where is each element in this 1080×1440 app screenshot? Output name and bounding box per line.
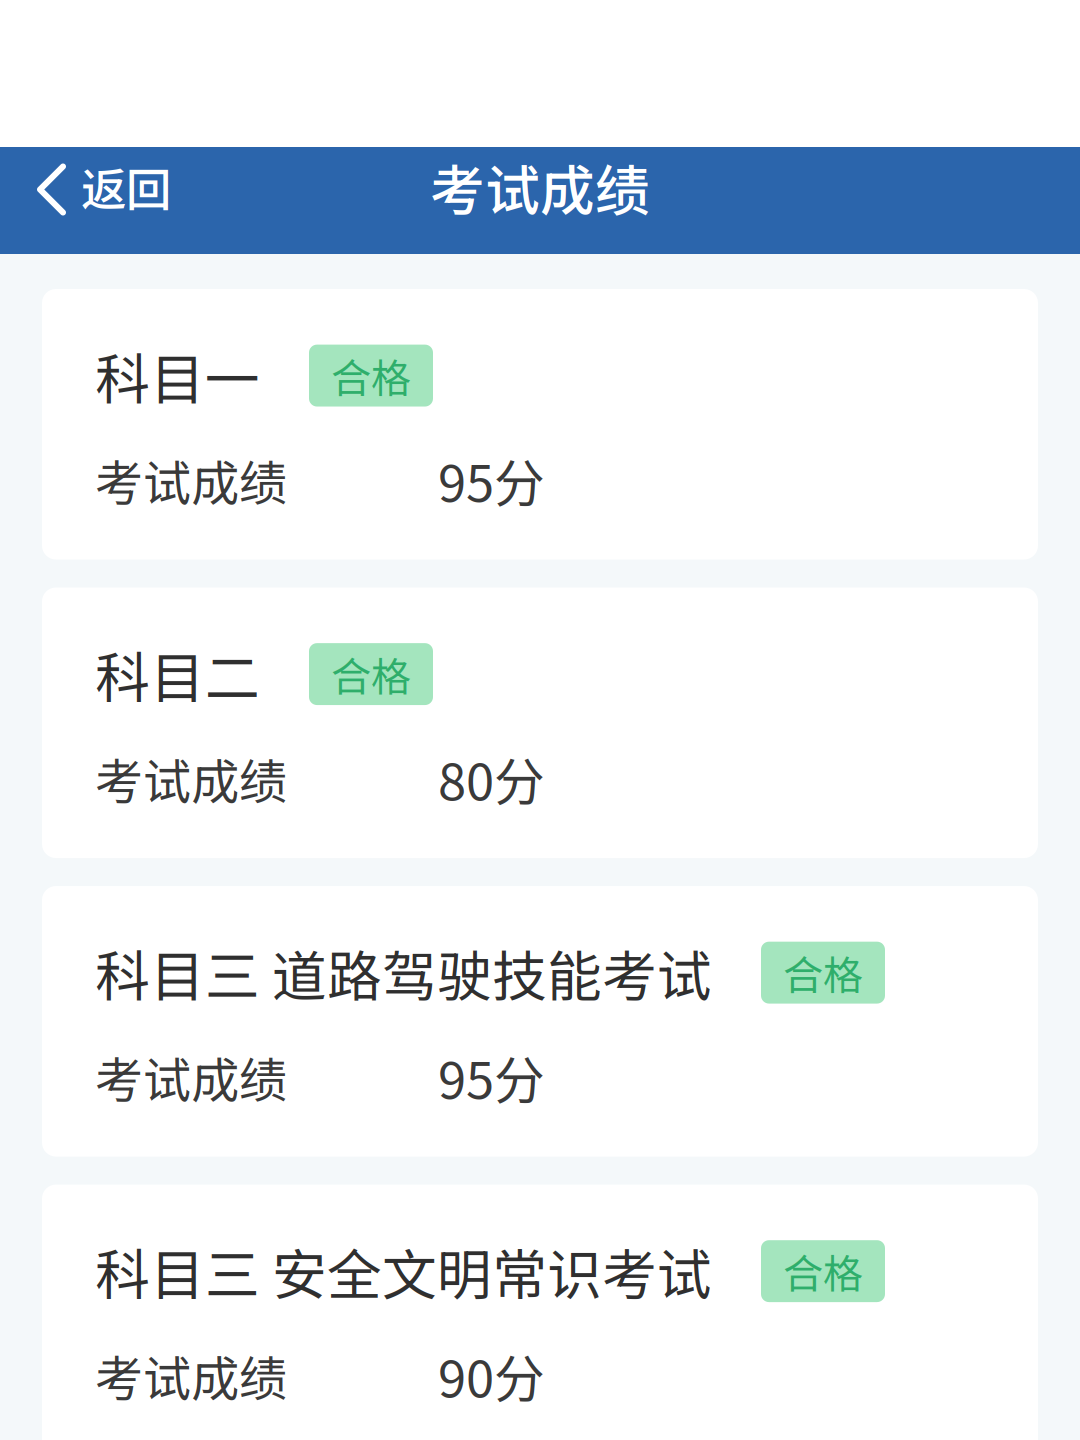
staticText: 95分: [438, 1040, 545, 1114]
staticText: 考试成绩: [95, 744, 287, 813]
button[interactable]: 返回: [0, 150, 195, 251]
staticText: 90分: [438, 1339, 545, 1412]
staticText: 考试成绩: [95, 445, 287, 515]
button[interactable]: 科目三 道路驾驶技能考试: [42, 886, 1038, 1156]
staticText: 返回: [81, 154, 171, 219]
button[interactable]: 科目二: [42, 587, 1038, 858]
staticText: 合格: [331, 645, 411, 703]
button[interactable]: 科目三 安全文明常识考试: [42, 1185, 1038, 1440]
staticText: 考试成绩: [95, 1042, 287, 1112]
staticText: 科目三 道路驾驶技能考试: [95, 933, 712, 1012]
staticText: 80分: [438, 742, 545, 815]
staticText: 合格: [783, 1242, 863, 1300]
staticText: 95分: [438, 443, 545, 517]
staticText: 考试成绩: [430, 147, 650, 227]
staticText: 合格: [331, 347, 411, 404]
staticText: 科目三 安全文明常识考试: [95, 1232, 712, 1311]
staticText: 考试成绩: [95, 1341, 287, 1410]
staticText: 科目二: [95, 634, 260, 714]
staticText: 合格: [783, 944, 863, 1002]
button[interactable]: 科目一: [42, 289, 1038, 559]
staticText: 科目一: [95, 336, 260, 415]
